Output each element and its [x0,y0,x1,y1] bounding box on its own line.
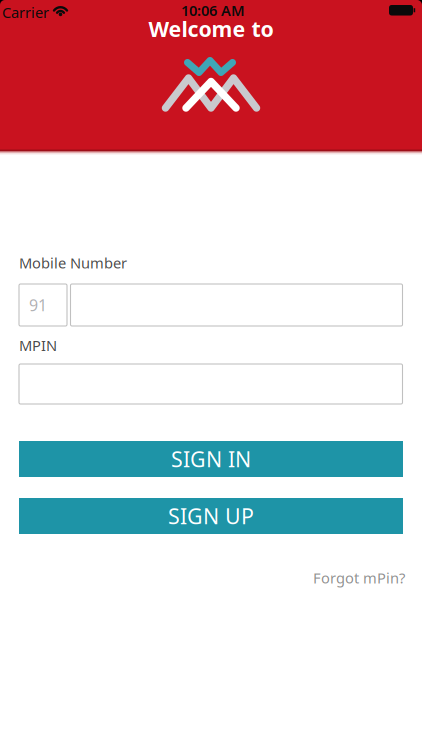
staticText: 91 [29,294,47,316]
staticText: SIGN IN [171,445,251,473]
button[interactable]: Mobile Number [70,284,402,326]
staticText: SIGN UP [168,502,254,530]
button[interactable]: Country code [19,284,67,326]
staticText: Forgot mPin? [313,568,405,587]
button[interactable]: Forgot mPin? [313,568,405,587]
button[interactable]: SIGN UP [19,498,403,534]
staticText: Mobile Number [19,253,127,272]
staticText: MPIN [19,335,57,355]
staticText: Welcome to [148,14,273,43]
staticText: Carrier [2,2,49,22]
button[interactable]: MPIN [19,364,402,404]
staticText: 10:06 AM [181,0,245,20]
button[interactable]: SIGN IN [19,441,403,477]
